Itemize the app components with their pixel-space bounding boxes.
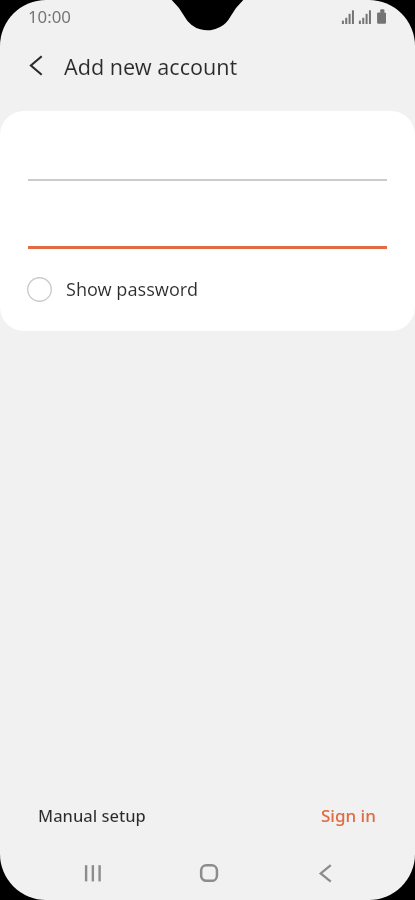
staticText: Sign in [321, 804, 376, 827]
staticText: Add new account [64, 52, 238, 81]
button[interactable]: Back [13, 43, 57, 87]
button[interactable]: Back [297, 850, 353, 894]
staticText: Manual setup [38, 804, 146, 826]
button[interactable]: Show password [0, 267, 415, 311]
button[interactable]: Sign in [307, 792, 390, 839]
button[interactable]: Home [180, 850, 236, 894]
button[interactable]: Manual setup [24, 792, 160, 838]
staticText: 10:00 [28, 5, 71, 28]
button[interactable]: Recent apps [64, 850, 120, 894]
staticText: Show password [66, 277, 198, 302]
